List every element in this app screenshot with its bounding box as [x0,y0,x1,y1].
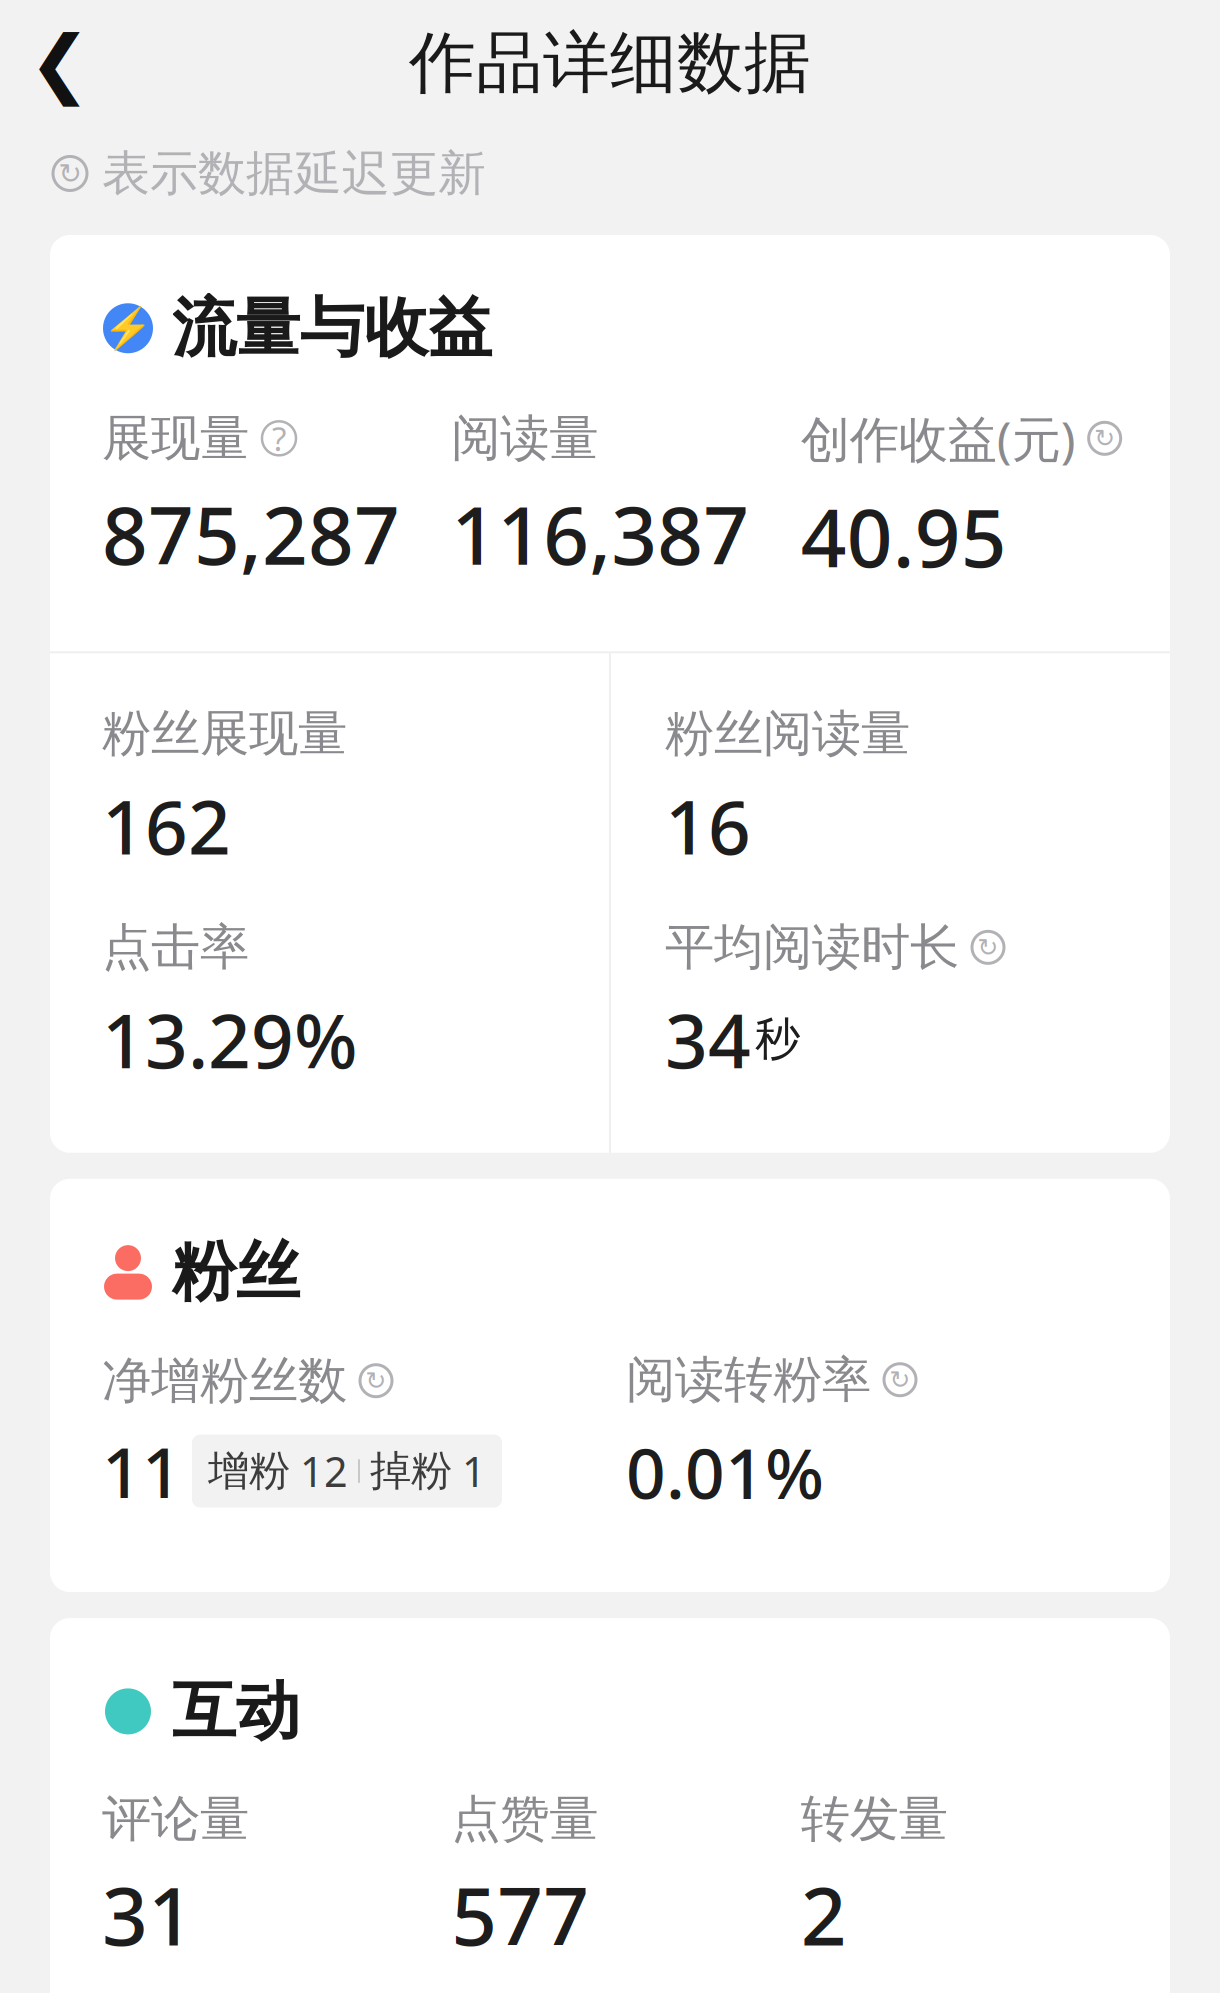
staticText: 秒 [755,1011,800,1067]
staticText: 点赞量 [451,1789,598,1849]
staticText: 162 [102,776,231,875]
staticText: 净增粉丝数 [102,1350,347,1411]
staticText: ↻ [365,1366,386,1395]
staticText: 11 [102,1425,182,1517]
staticText: 577 [451,1861,589,1967]
staticText: 阅读转粉率 [626,1349,871,1410]
staticText: 展现量 [102,408,249,469]
staticText: 阅读量 [451,408,598,469]
staticText: 平均阅读时长 [665,917,959,978]
staticText: 875,287 [102,481,400,587]
staticText: ? [272,416,286,460]
staticText: 12 [300,1444,348,1498]
staticText: 116,387 [451,481,749,587]
staticText: ↻ [977,933,998,962]
staticText: 粉丝展现量 [102,703,347,764]
staticText: ↻ [889,1365,910,1394]
staticText: 互动 [172,1672,300,1751]
staticText: 16 [665,776,751,875]
staticText: 流量与收益 [172,289,492,368]
staticText: 点击率 [102,917,249,978]
staticText: 表示数据延迟更新 [102,144,486,203]
staticText: ⚡ [103,305,153,351]
staticText: 粉丝 [172,1233,300,1311]
staticText: 0.01% [626,1426,824,1518]
staticText: 粉丝阅读量 [665,703,910,764]
staticText: 作品详细数据 [409,22,811,104]
staticText: 掉粉 [370,1446,452,1496]
staticText: 转发量 [801,1789,948,1849]
staticText: 40.95 [801,483,1007,589]
staticText: ❮ [28,21,91,105]
staticText: 增粉 [208,1446,290,1496]
staticText: 34 [665,990,751,1089]
staticText: 31 [102,1861,194,1967]
staticText: 1 [462,1444,486,1498]
button[interactable]: Back [0,13,120,113]
staticText: 2 [801,1861,847,1967]
staticText: ↻ [1094,424,1115,453]
staticText: 13.29% [102,990,358,1089]
staticText: 创作收益(元) [801,406,1076,471]
staticText: ↻ [58,158,81,189]
staticText: 评论量 [102,1789,249,1849]
